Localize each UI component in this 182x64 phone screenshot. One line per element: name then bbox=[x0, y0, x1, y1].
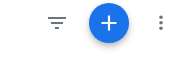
button[interactable]: Sort bbox=[45, 11, 69, 35]
button[interactable]: Add bbox=[89, 3, 129, 43]
button[interactable]: More options bbox=[149, 11, 173, 35]
